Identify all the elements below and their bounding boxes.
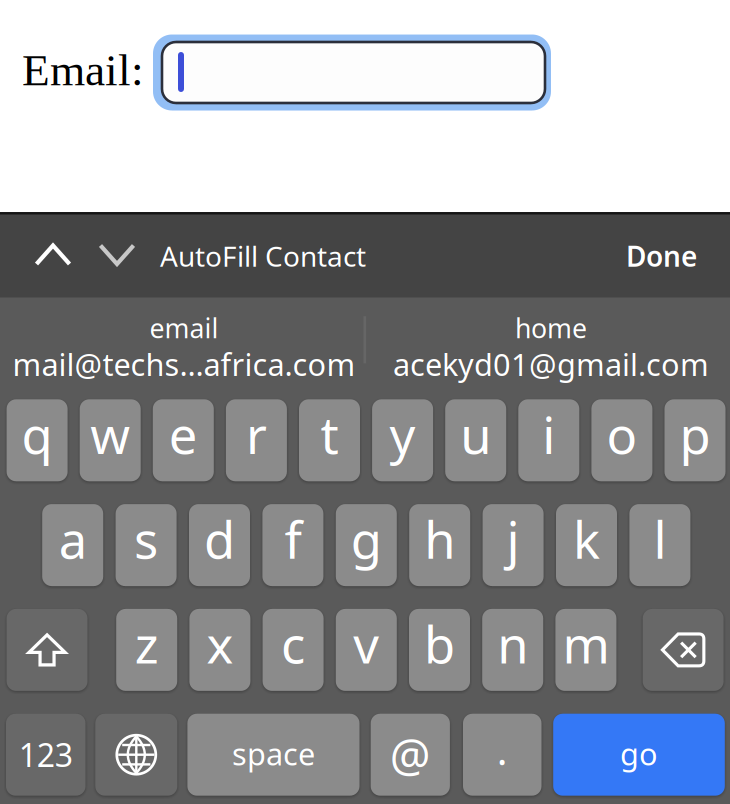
staticText: y xyxy=(390,401,416,468)
staticText: f xyxy=(284,505,301,573)
button[interactable]: z xyxy=(116,609,177,691)
staticText: r xyxy=(246,401,267,468)
staticText: g xyxy=(351,505,382,573)
button[interactable]: i xyxy=(518,399,579,481)
staticText: p xyxy=(679,401,710,468)
button[interactable]: g xyxy=(336,504,397,586)
staticText: a xyxy=(59,505,87,573)
button[interactable]: j xyxy=(483,504,544,586)
button[interactable]: Shift xyxy=(7,609,87,691)
button[interactable]: home xyxy=(369,297,730,385)
staticText: go xyxy=(620,733,658,774)
button[interactable]: email xyxy=(2,297,366,385)
button[interactable]: s xyxy=(116,504,177,586)
button[interactable]: m xyxy=(555,609,616,691)
staticText: k xyxy=(573,505,600,573)
staticText: u xyxy=(460,401,491,468)
button[interactable]: space xyxy=(187,714,359,796)
button[interactable]: @ xyxy=(371,714,450,796)
staticText: Done xyxy=(626,237,697,275)
staticText: 123 xyxy=(19,733,73,776)
button[interactable]: . xyxy=(463,714,541,796)
button[interactable]: h xyxy=(409,504,470,586)
staticText: b xyxy=(424,610,455,678)
button[interactable]: Done xyxy=(587,213,697,298)
staticText: mail@techs...africa.com xyxy=(12,344,355,384)
staticText: Email: xyxy=(22,45,144,95)
staticText: s xyxy=(134,505,158,573)
staticText: z xyxy=(135,610,159,678)
staticText: acekyd01@gmail.com xyxy=(393,344,709,384)
button[interactable]: f xyxy=(262,504,323,586)
staticText: l xyxy=(653,505,666,573)
button[interactable]: y xyxy=(372,399,433,481)
staticText: n xyxy=(497,610,528,678)
button[interactable]: Next keyboard xyxy=(95,714,177,796)
button[interactable]: q xyxy=(7,399,68,481)
button[interactable]: t xyxy=(299,399,360,481)
staticText: x xyxy=(206,610,233,678)
button[interactable]: Next field xyxy=(86,212,148,297)
staticText: m xyxy=(562,610,609,678)
button[interactable]: v xyxy=(336,609,397,691)
button[interactable]: b xyxy=(409,609,470,691)
button[interactable]: n xyxy=(482,609,543,691)
staticText: email xyxy=(149,310,218,346)
staticText: . xyxy=(497,723,508,776)
staticText: w xyxy=(90,401,130,468)
button[interactable]: 123 xyxy=(6,714,85,796)
button[interactable]: k xyxy=(556,504,617,586)
button[interactable]: r xyxy=(226,399,287,481)
staticText: space xyxy=(232,733,315,774)
staticText: j xyxy=(507,505,520,573)
button[interactable]: a xyxy=(42,504,103,586)
button[interactable]: o xyxy=(591,399,652,481)
button[interactable]: go xyxy=(553,714,725,796)
staticText: i xyxy=(542,401,555,468)
button[interactable]: p xyxy=(664,399,725,481)
staticText: AutoFill Contact xyxy=(160,237,366,275)
staticText: c xyxy=(281,610,305,678)
button[interactable]: w xyxy=(80,399,141,481)
staticText: v xyxy=(353,610,379,678)
staticText: h xyxy=(424,505,455,573)
button[interactable]: e xyxy=(153,399,214,481)
button[interactable]: x xyxy=(189,609,250,691)
button[interactable]: u xyxy=(445,399,506,481)
button[interactable]: l xyxy=(629,504,690,586)
button[interactable]: Previous field xyxy=(22,212,84,297)
button[interactable]: d xyxy=(189,504,250,586)
button[interactable]: Delete xyxy=(643,609,724,691)
button[interactable]: c xyxy=(263,609,324,691)
staticText: d xyxy=(204,505,235,573)
staticText: o xyxy=(606,401,637,468)
staticText: t xyxy=(320,401,338,468)
staticText: @ xyxy=(390,725,431,785)
staticText: home xyxy=(515,310,587,346)
staticText: e xyxy=(169,401,198,468)
staticText: q xyxy=(22,401,53,468)
